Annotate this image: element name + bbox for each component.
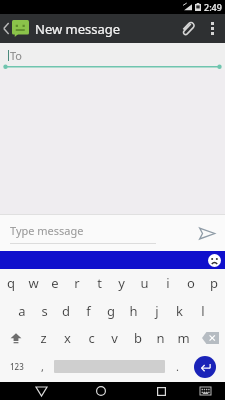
- staticText: Type message: [10, 223, 84, 238]
- button[interactable]: n: [149, 324, 172, 351]
- staticText: .: [176, 359, 179, 374]
- button[interactable]: Shift: [0, 324, 31, 351]
- staticText: e: [51, 274, 59, 292]
- button[interactable]: Enter: [185, 351, 225, 382]
- button[interactable]: i: [156, 269, 179, 297]
- button[interactable]: e: [44, 269, 66, 297]
- button[interactable]: y: [110, 269, 133, 297]
- button[interactable]: Recent apps: [146, 382, 176, 400]
- button[interactable]: Backspace: [195, 324, 225, 351]
- button[interactable]: More options: [202, 14, 222, 43]
- button[interactable]: Emoji: [208, 254, 221, 267]
- button[interactable]: Type message: [0, 215, 189, 251]
- staticText: c: [88, 329, 95, 347]
- button[interactable]: c: [79, 324, 103, 351]
- staticText: w: [28, 274, 39, 292]
- staticText: New message: [35, 20, 121, 38]
- staticText: n: [156, 329, 165, 347]
- staticText: q: [7, 274, 15, 292]
- staticText: j: [155, 302, 159, 320]
- button[interactable]: t: [88, 269, 110, 297]
- staticText: u: [140, 274, 149, 292]
- staticText: ,: [41, 359, 44, 374]
- button[interactable]: Navigate up: [0, 14, 10, 43]
- staticText: z: [40, 329, 47, 347]
- staticText: i: [166, 274, 170, 292]
- staticText: d: [62, 302, 70, 320]
- staticText: k: [176, 302, 183, 320]
- button[interactable]: r: [66, 269, 88, 297]
- staticText: To: [10, 48, 23, 63]
- button[interactable]: k: [168, 297, 191, 324]
- staticText: b: [134, 329, 142, 347]
- button[interactable]: w: [22, 269, 44, 297]
- button[interactable]: h: [122, 297, 145, 324]
- button[interactable]: .: [169, 351, 185, 382]
- button[interactable]: Back: [26, 382, 56, 400]
- button[interactable]: To: [0, 43, 225, 70]
- button[interactable]: Home: [86, 382, 116, 400]
- staticText: p: [210, 274, 218, 292]
- staticText: 2:49: [204, 1, 222, 13]
- button[interactable]: ,: [34, 351, 50, 382]
- button[interactable]: Attach: [172, 14, 202, 43]
- staticText: o: [187, 274, 195, 292]
- button[interactable]: v: [103, 324, 126, 351]
- button[interactable]: l: [191, 297, 214, 324]
- button[interactable]: b: [126, 324, 149, 351]
- button[interactable]: a: [11, 297, 33, 324]
- button[interactable]: m: [172, 324, 195, 351]
- button[interactable]: Send: [189, 215, 225, 251]
- staticText: s: [41, 302, 48, 320]
- button[interactable]: z: [31, 324, 55, 351]
- staticText: l: [201, 302, 205, 320]
- staticText: g: [107, 302, 115, 320]
- button[interactable]: j: [145, 297, 168, 324]
- staticText: 123: [10, 361, 24, 372]
- button[interactable]: g: [99, 297, 122, 324]
- staticText: f: [86, 302, 91, 320]
- staticText: y: [118, 274, 125, 292]
- button[interactable]: x: [55, 324, 79, 351]
- button[interactable]: o: [179, 269, 202, 297]
- button[interactable]: u: [133, 269, 156, 297]
- button[interactable]: 123: [0, 351, 34, 382]
- staticText: x: [64, 329, 71, 347]
- staticText: m: [177, 329, 190, 347]
- staticText: r: [74, 274, 80, 292]
- staticText: v: [111, 329, 118, 347]
- button[interactable]: f: [77, 297, 99, 324]
- staticText: h: [129, 302, 138, 320]
- button[interactable]: Switch keyboard: [193, 382, 217, 400]
- staticText: t: [97, 274, 102, 292]
- staticText: a: [18, 302, 26, 320]
- button[interactable]: s: [33, 297, 55, 324]
- button[interactable]: q: [0, 269, 22, 297]
- button[interactable]: d: [55, 297, 77, 324]
- button[interactable]: p: [202, 269, 225, 297]
